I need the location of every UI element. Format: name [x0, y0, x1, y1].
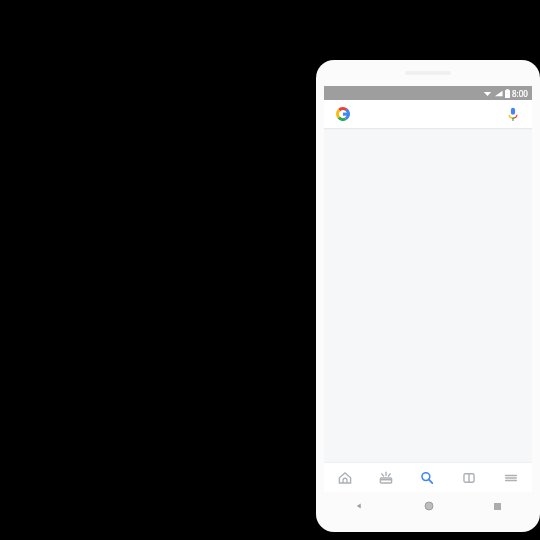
other: Google [336, 107, 350, 121]
button[interactable]: Search [406, 463, 448, 492]
staticText: 8:00 [512, 88, 528, 99]
button[interactable]: Updates [365, 463, 406, 492]
button[interactable]: Recent apps [463, 492, 532, 520]
button[interactable]: Collections [448, 463, 490, 492]
button[interactable]: More [490, 463, 532, 492]
button[interactable]: Google [324, 100, 532, 128]
button[interactable]: Back [324, 492, 394, 520]
button[interactable]: Home [324, 463, 365, 492]
button[interactable]: Voice search [506, 107, 520, 121]
button[interactable]: Home [394, 492, 463, 520]
